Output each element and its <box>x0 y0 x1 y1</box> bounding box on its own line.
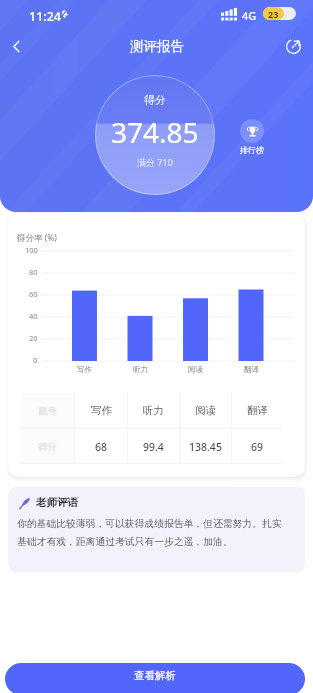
staticText: 排行榜 <box>240 145 264 155</box>
staticText: 得分 <box>38 441 57 453</box>
staticText: 69 <box>251 440 264 454</box>
staticText: 60 <box>29 289 38 299</box>
staticText: 0 <box>33 355 38 365</box>
staticText: 11:24 <box>29 8 62 25</box>
button[interactable]: 查看解析 <box>5 663 305 693</box>
staticText: 你的基础比较薄弱，可以获得成绩报告单，但还需努力。扎实基础才有戏，距离通过考试只… <box>17 518 289 548</box>
staticText: 满分 710 <box>137 156 173 168</box>
staticText: 听力 <box>143 404 164 417</box>
button[interactable]: Share <box>279 32 307 60</box>
staticText: 题号 <box>38 405 57 417</box>
button[interactable]: 排行榜 <box>238 119 266 155</box>
staticText: 100 <box>25 245 38 255</box>
staticText: 写作 <box>91 404 112 417</box>
staticText: 40 <box>29 311 38 321</box>
staticText: 查看解析 <box>134 669 176 682</box>
staticText: 138.45 <box>189 440 222 454</box>
staticText: 阅读 <box>195 404 216 417</box>
button[interactable]: Back <box>0 30 32 62</box>
staticText: 翻译 <box>247 404 268 417</box>
staticText: 23 <box>268 8 279 20</box>
staticText: 测评报告 <box>130 38 184 55</box>
staticText: 80 <box>29 267 38 277</box>
staticText: 得分 <box>144 93 166 107</box>
staticText: 99.4 <box>143 440 164 454</box>
staticText: 阅读 <box>188 365 203 374</box>
staticText: 翻译 <box>244 365 259 374</box>
staticText: 老师评语 <box>36 496 78 509</box>
staticText: 374.85 <box>111 113 199 151</box>
staticText: 68 <box>95 440 108 454</box>
staticText: 听力 <box>133 365 148 374</box>
staticText: 20 <box>29 333 38 343</box>
staticText: 写作 <box>77 365 92 374</box>
staticText: 4G <box>242 8 257 23</box>
staticText: 得分率 (%) <box>17 232 57 244</box>
